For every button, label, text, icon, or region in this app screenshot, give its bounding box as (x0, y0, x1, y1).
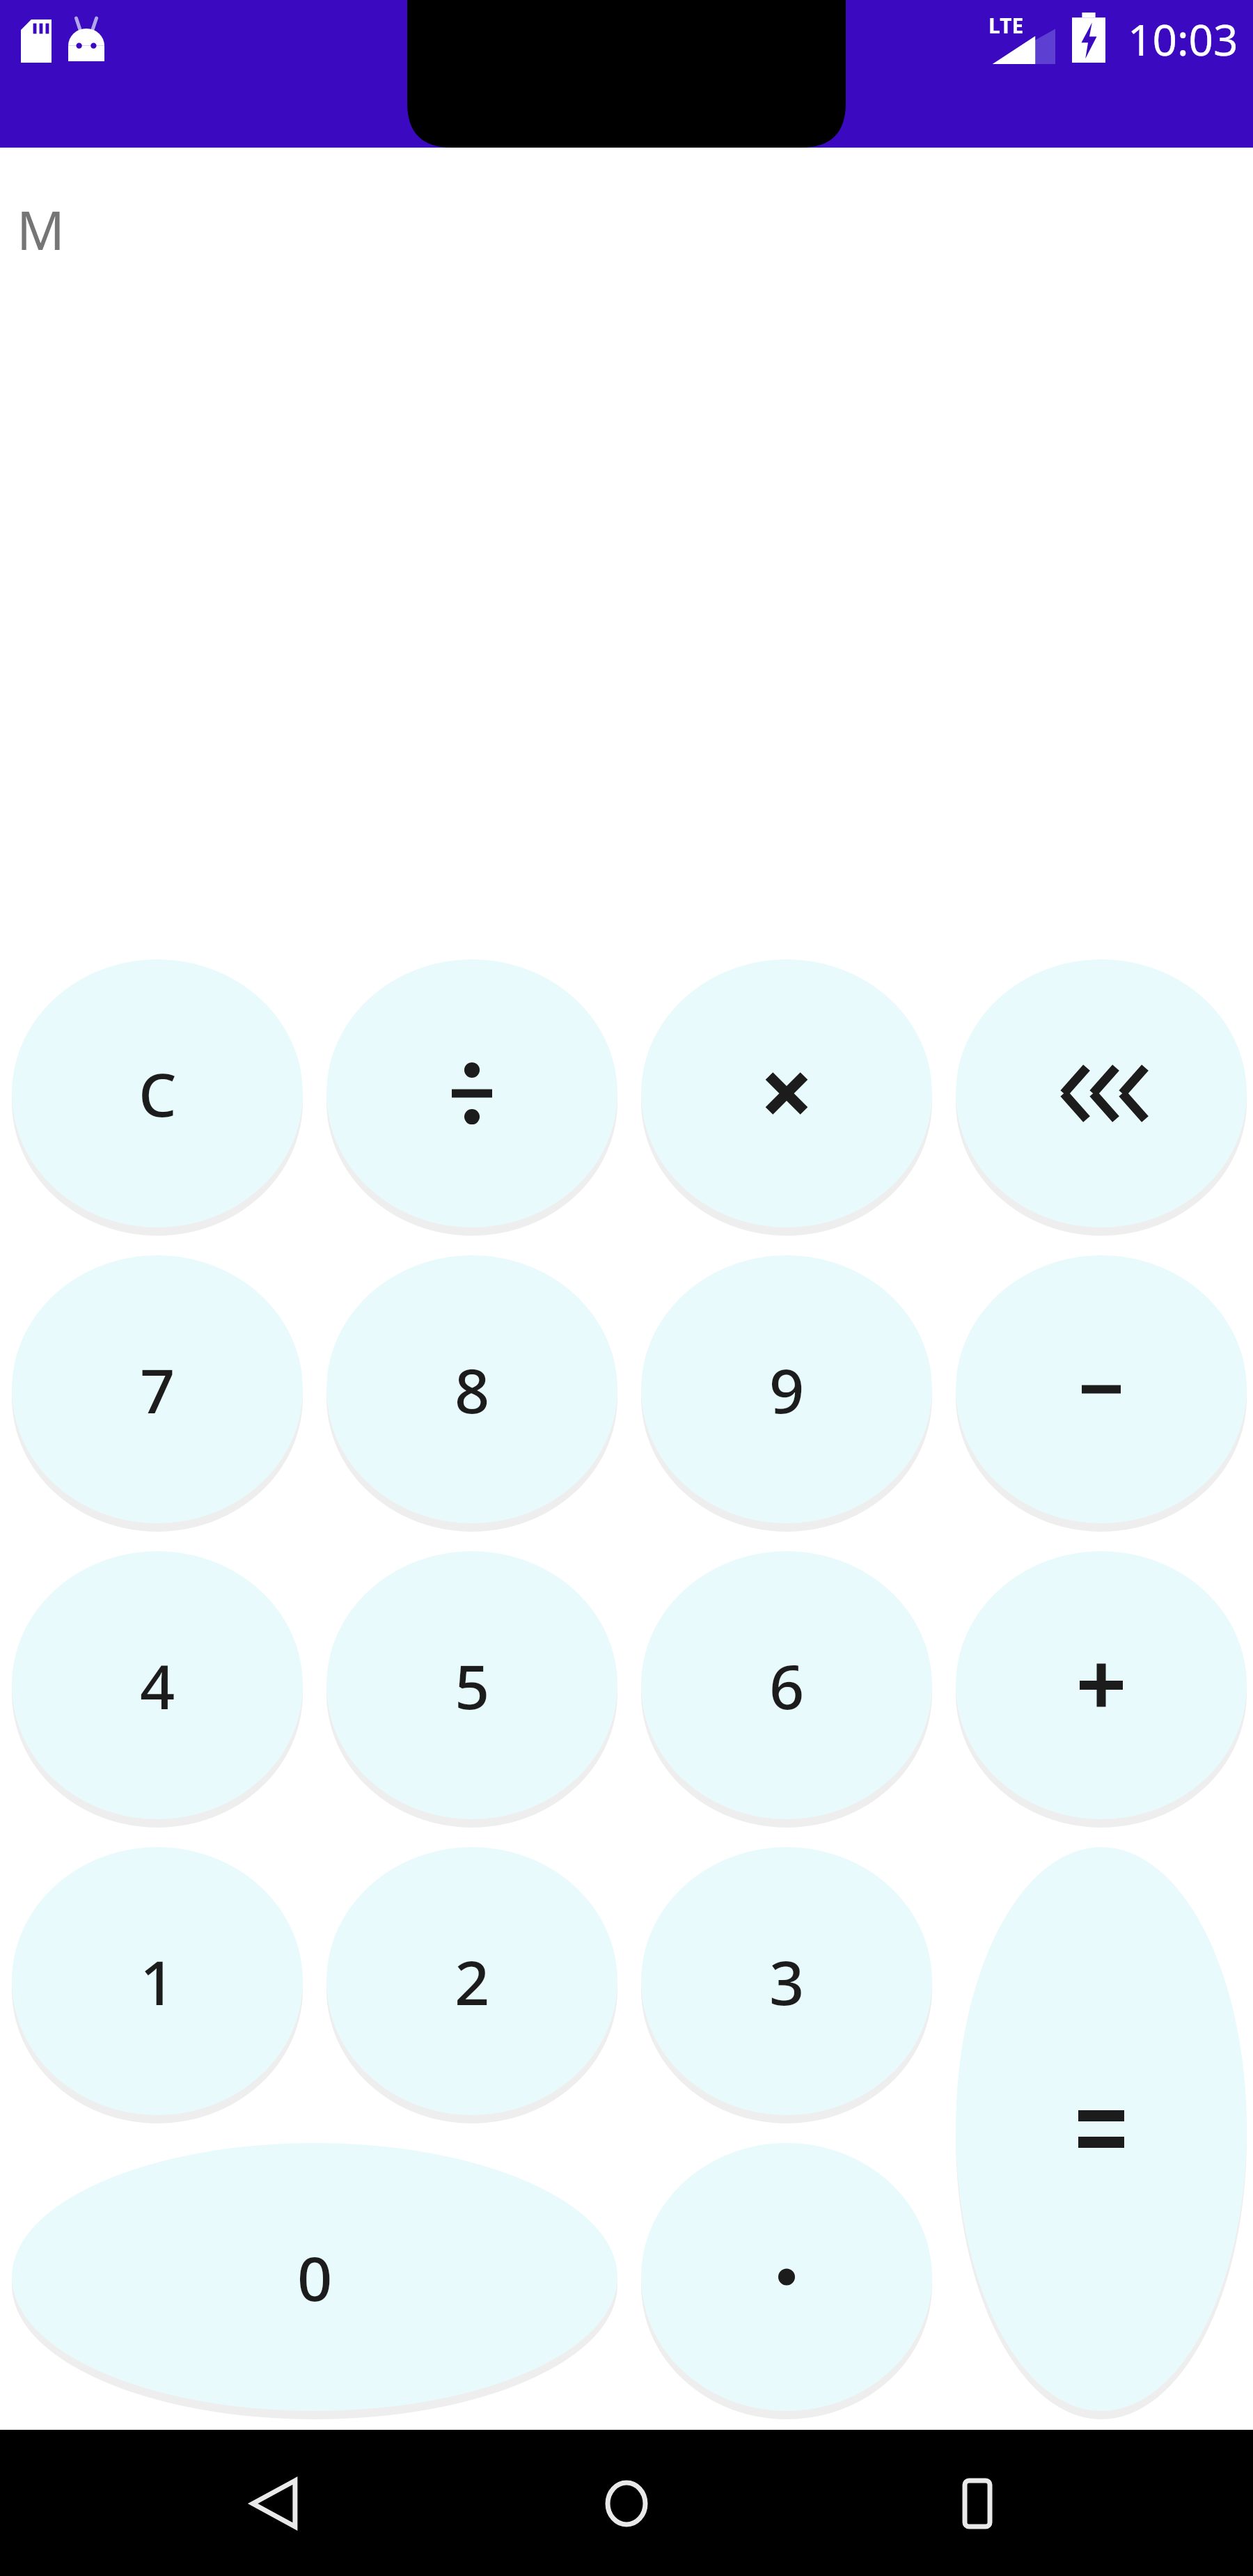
staticText: 4 (140, 1644, 175, 1727)
staticText: M (17, 194, 65, 266)
staticText: 5 (455, 1644, 490, 1727)
button[interactable]: Multiply (641, 959, 932, 1227)
button[interactable]: Clear (12, 959, 303, 1227)
staticText: 8 (455, 1348, 490, 1431)
button[interactable] (641, 1551, 932, 1819)
staticText: LTE (988, 11, 1024, 40)
button[interactable]: Back (171, 2444, 380, 2562)
button[interactable]: Minus (956, 1255, 1247, 1523)
staticText: 2 (455, 1940, 490, 2023)
button[interactable]: Divide (326, 959, 617, 1227)
button[interactable] (326, 1551, 617, 1819)
button[interactable]: Equals (956, 1847, 1247, 2411)
button[interactable]: Plus (956, 1551, 1247, 1819)
button[interactable] (12, 1847, 303, 2115)
button[interactable] (641, 1847, 932, 2115)
staticText: 7 (140, 1348, 175, 1431)
staticText: 10:03 (1128, 10, 1238, 68)
staticText: 1 (140, 1940, 175, 2023)
staticText: 9 (769, 1348, 805, 1431)
button[interactable] (641, 1255, 932, 1523)
button[interactable] (326, 1255, 617, 1523)
staticText: C (139, 1053, 177, 1134)
staticText: 0 (297, 2236, 333, 2319)
button[interactable] (12, 1551, 303, 1819)
staticText: 6 (769, 1644, 805, 1727)
button[interactable]: Home (522, 2444, 731, 2562)
button[interactable]: Decimal point (641, 2143, 932, 2411)
button[interactable] (12, 2143, 617, 2411)
button[interactable]: Recent apps (873, 2444, 1082, 2562)
staticText: 3 (769, 1940, 805, 2023)
button[interactable]: Backspace (956, 959, 1247, 1227)
button[interactable] (12, 1255, 303, 1523)
button[interactable] (326, 1847, 617, 2115)
